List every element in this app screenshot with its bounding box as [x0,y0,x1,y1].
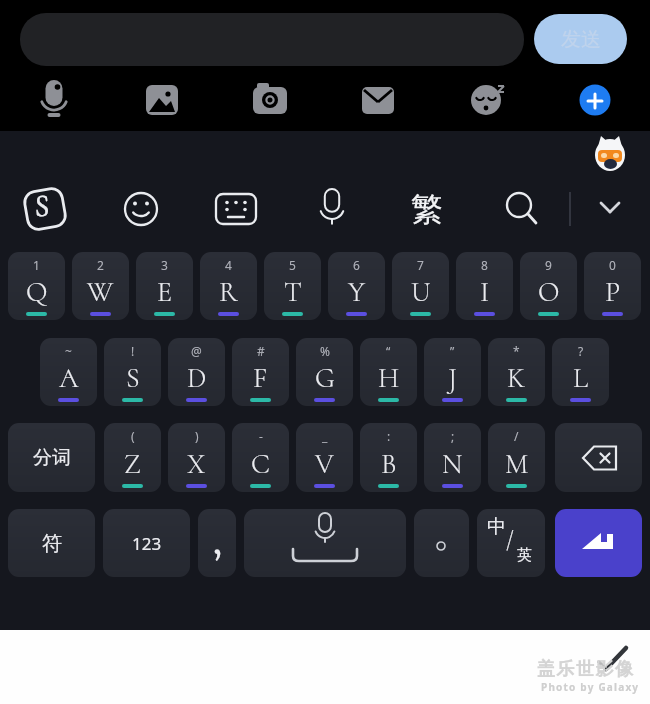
button[interactable]: 9 [520,252,577,320]
button[interactable]: : [360,423,417,492]
staticText: W [87,275,114,309]
button[interactable]: % [296,338,353,406]
staticText: 5 [289,257,296,273]
button[interactable] [555,509,642,577]
staticText: C [251,447,270,481]
staticText: _ [322,428,328,444]
staticText: @ [191,343,202,359]
staticText: ( [131,428,135,444]
staticText: T [284,275,302,309]
staticText: 发送 [561,27,601,52]
button[interactable]: “ [360,338,417,406]
button[interactable]: 7 [392,252,449,320]
staticText: F [253,361,268,395]
button[interactable]: 4 [200,252,257,320]
staticText: S [126,361,140,395]
button[interactable]: * [488,338,545,406]
button[interactable]: 5 [264,252,321,320]
button[interactable]: ; [424,423,481,492]
staticText: 7 [417,257,424,273]
button[interactable]: 123 [103,509,190,577]
staticText: I [480,275,490,309]
button[interactable] [467,80,507,120]
button[interactable]: 符 [8,509,95,577]
button[interactable]: 6 [328,252,385,320]
staticText: 盖乐世影像 [537,658,635,681]
staticText: 1 [33,257,40,273]
staticText: 123 [132,532,162,555]
button[interactable]: 0 [584,252,641,320]
staticText: V [315,447,334,481]
staticText: Z [124,447,141,481]
button[interactable]: 1 [8,252,65,320]
staticText: / [506,526,514,554]
staticText: A [59,361,79,395]
staticText: ? [578,343,584,359]
staticText: 繁 [411,189,443,229]
staticText: 9 [545,257,552,273]
button[interactable]: @ [168,338,225,406]
button[interactable]: ? [552,338,609,406]
button[interactable] [24,188,66,230]
button[interactable]: ! [104,338,161,406]
button[interactable]: ~ [40,338,97,406]
button[interactable]: 8 [456,252,513,320]
staticText: / [514,428,519,444]
button[interactable] [589,188,631,230]
staticText: K [507,361,526,395]
button[interactable]: ) [168,423,225,492]
staticText: P [605,275,621,309]
staticText: G [315,361,335,395]
staticText: J [448,361,457,395]
staticText: , [213,516,222,564]
button[interactable]: / [488,423,545,492]
button[interactable]: 3 [136,252,193,320]
button[interactable] [142,80,182,120]
staticText: 0 [609,257,616,273]
button[interactable]: 中 [477,509,545,577]
staticText: ” [450,343,455,359]
button[interactable] [120,188,162,230]
staticText: : [387,428,391,444]
staticText: * [513,343,520,359]
button[interactable] [215,188,257,230]
staticText: % [320,343,330,359]
button[interactable] [498,188,540,230]
staticText: L [573,361,588,395]
button[interactable] [20,13,524,66]
button[interactable]: ( [104,423,161,492]
staticText: R [219,275,238,309]
staticText: ) [195,428,199,444]
button[interactable]: # [232,338,289,406]
button[interactable]: 2 [72,252,129,320]
staticText: 分词 [33,446,71,470]
staticText: ! [131,343,135,359]
button[interactable]: 分词 [8,423,95,492]
staticText: E [157,275,172,309]
button[interactable]: _ [296,423,353,492]
staticText: 6 [353,257,360,273]
button[interactable] [311,188,353,230]
staticText: ; [451,428,455,444]
staticText: S [35,189,50,224]
button[interactable]: ” [424,338,481,406]
staticText: 2 [97,257,104,273]
button[interactable]: 繁 [405,187,449,231]
button[interactable]: - [232,423,289,492]
staticText: H [378,361,400,395]
staticText: 符 [42,531,62,556]
button[interactable] [244,509,406,577]
staticText: “ [386,343,391,359]
button[interactable] [34,80,74,120]
button[interactable] [575,80,615,120]
button[interactable] [250,80,290,120]
button[interactable]: , [198,509,236,577]
staticText: B [381,447,397,481]
button[interactable] [555,423,642,492]
staticText: Photo by Galaxy [541,680,640,694]
staticText: U [411,275,431,309]
button[interactable] [358,80,398,120]
button[interactable]: 发送 [534,14,627,64]
button[interactable] [414,509,469,577]
staticText: # [257,343,265,359]
